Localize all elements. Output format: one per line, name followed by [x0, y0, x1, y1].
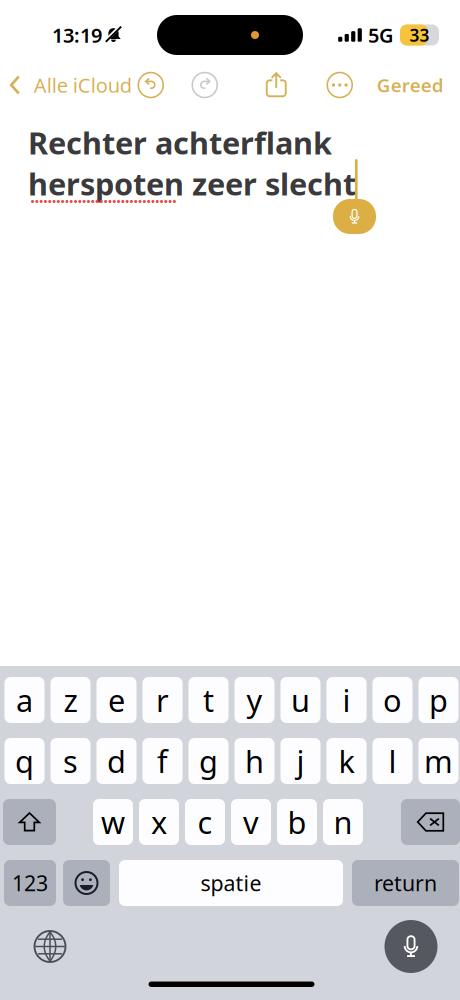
button[interactable]: spatie [119, 860, 343, 906]
staticText: o [383, 680, 402, 720]
button[interactable]: Emoji [63, 860, 110, 906]
button[interactable]: l [372, 738, 412, 784]
button[interactable]: Backspace [401, 799, 460, 845]
staticText: t [203, 680, 214, 720]
staticText: w [101, 802, 125, 842]
button[interactable]: Share [259, 68, 294, 102]
staticText: u [291, 680, 310, 720]
button[interactable]: k [326, 738, 366, 784]
staticText: 5G [368, 22, 394, 48]
button[interactable]: i [326, 677, 366, 723]
staticText: herspoten zeer slecht [28, 163, 356, 204]
button[interactable]: a [4, 677, 44, 723]
staticText: s [63, 741, 78, 781]
staticText: q [15, 741, 34, 781]
button[interactable]: h [234, 738, 274, 784]
staticText: x [151, 802, 167, 842]
staticText: spatie [200, 869, 261, 897]
button[interactable]: More [321, 66, 359, 104]
staticText: p [429, 680, 448, 720]
staticText: b [287, 802, 306, 842]
staticText: v [243, 802, 259, 842]
button[interactable]: g [188, 738, 228, 784]
staticText: 13:19 [52, 22, 102, 48]
staticText: h [245, 741, 264, 781]
button[interactable]: s [50, 738, 90, 784]
staticText: z [63, 680, 77, 720]
button[interactable]: Next keyboard [34, 931, 65, 962]
button[interactable]: Dictate [333, 199, 376, 234]
button[interactable]: Undo [132, 66, 170, 104]
staticText: g [199, 741, 218, 781]
button[interactable]: p [418, 677, 458, 723]
staticText: c [197, 802, 212, 842]
button[interactable]: Shift [3, 799, 56, 845]
button[interactable]: Dictate [384, 920, 437, 973]
button[interactable]: o [372, 677, 412, 723]
button[interactable]: f [142, 738, 182, 784]
button[interactable]: b [277, 799, 317, 845]
button[interactable]: Return [352, 860, 459, 906]
staticText: n [333, 802, 352, 842]
staticText: Rechter achterflank [28, 122, 332, 163]
staticText: k [338, 741, 354, 781]
staticText: return [374, 869, 437, 897]
button[interactable]: z [50, 677, 90, 723]
button[interactable]: c [185, 799, 225, 845]
button[interactable]: q [4, 738, 44, 784]
button[interactable]: r [142, 677, 182, 723]
staticText: m [424, 741, 453, 781]
button[interactable]: u [280, 677, 320, 723]
staticText: d [107, 741, 126, 781]
button[interactable]: j [280, 738, 320, 784]
staticText: l [388, 741, 396, 781]
staticText: y [246, 680, 262, 720]
staticText: a [16, 680, 33, 720]
staticText: j [296, 741, 304, 781]
staticText: Alle iCloud [34, 72, 132, 98]
button[interactable]: Gereed [367, 65, 460, 105]
button[interactable]: e [96, 677, 136, 723]
staticText: i [342, 680, 350, 720]
staticText: e [108, 680, 125, 720]
button[interactable]: Numbers [4, 860, 56, 906]
button[interactable]: Redo [186, 66, 224, 104]
button[interactable]: w [93, 799, 133, 845]
staticText: 33 [409, 23, 429, 46]
button[interactable]: d [96, 738, 136, 784]
button[interactable]: x [139, 799, 179, 845]
button[interactable]: Alle iCloud [0, 64, 132, 106]
button[interactable]: y [234, 677, 274, 723]
staticText: r [156, 680, 169, 720]
button[interactable]: m [418, 738, 458, 784]
staticText: Gereed [377, 73, 444, 97]
button[interactable]: v [231, 799, 271, 845]
staticText: 123 [12, 869, 48, 897]
button[interactable]: n [323, 799, 363, 845]
staticText: f [157, 741, 168, 781]
button[interactable]: t [188, 677, 228, 723]
